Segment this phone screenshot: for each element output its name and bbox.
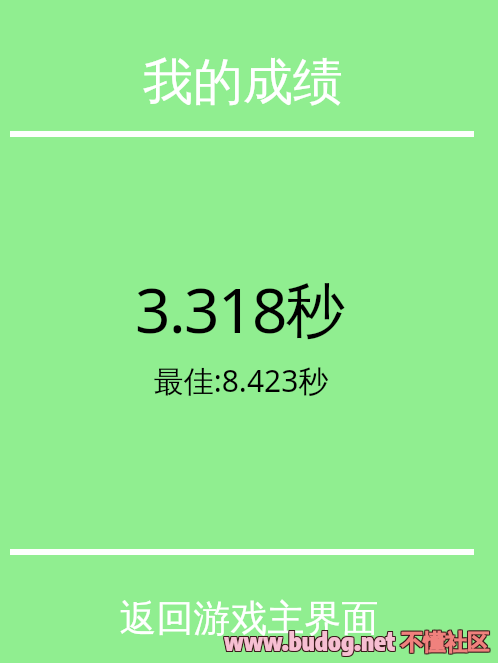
staticText: 不懂社区: [402, 630, 490, 658]
staticText: 返回游戏主界面: [0, 595, 498, 642]
staticText: 不懂社区: [402, 628, 490, 656]
staticText: 不懂社区: [401, 629, 489, 657]
button[interactable]: 返回游戏主界面: [0, 555, 498, 663]
staticText: 3.318: [135, 267, 286, 351]
staticText: www.budog.net: [224, 627, 396, 657]
staticText: www.budog.net: [223, 627, 395, 657]
staticText: www.budog.net: [223, 626, 395, 656]
staticText: 不懂社区: [401, 628, 489, 656]
staticText: 不懂社区: [400, 629, 488, 657]
staticText: www.budog.net: [224, 625, 396, 655]
staticText: 我的成绩: [0, 51, 492, 114]
staticText: 不懂社区: [401, 630, 489, 658]
staticText: www.budog.net: [225, 627, 397, 657]
staticText: www.budog.net: [224, 626, 396, 656]
staticText: www.budog.net: [225, 625, 397, 655]
staticText: 不懂社区: [400, 628, 488, 656]
staticText: 不懂社区: [402, 629, 490, 657]
staticText: 不懂社区: [400, 630, 488, 658]
staticText: 秒: [286, 274, 345, 348]
staticText: www.budog.net: [223, 625, 395, 655]
staticText: www.budog.net: [225, 626, 397, 656]
staticText: 最佳:8.423秒: [0, 360, 490, 401]
